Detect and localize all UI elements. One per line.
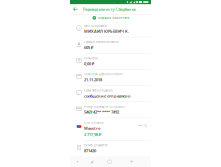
staticText: Счет списания: [84, 121, 104, 124]
button[interactable]: Главный экран: [99, 156, 120, 167]
button[interactable]: Номер счета/карты получателя: [70, 102, 151, 118]
staticText: 5469 42** **** 7492: [84, 109, 119, 115]
staticText: Сумма в валюте списания: [84, 40, 119, 44]
button[interactable]: ФИО получателя: [70, 21, 151, 37]
button[interactable]: Плановая дата исполнения: [70, 70, 151, 86]
button[interactable]: Сумма в валюте списания: [70, 37, 151, 53]
staticText: Статус SMS сообщения: [84, 89, 113, 92]
staticText: Maestro: [84, 125, 100, 131]
button[interactable]: Скрыть клавиатуру: [71, 156, 84, 167]
button[interactable]: Номер документа: [70, 141, 151, 156]
staticText: Номер счета/карты получателя: [84, 105, 125, 108]
staticText: 0,00 ₽: [84, 61, 94, 66]
staticText: Операция выполнена: [97, 16, 128, 20]
staticText: 871420: [84, 148, 96, 153]
button[interactable]: Последние приложения: [120, 156, 144, 167]
staticText: 21.11.2018: [84, 77, 102, 82]
staticText: Плановая дата исполнения: [84, 72, 123, 76]
button[interactable]: Статус SMS сообщения: [70, 86, 151, 102]
staticText: сообщение отправлено: [84, 93, 130, 98]
staticText: 2 717,98 ₽: [84, 132, 101, 137]
staticText: Номер документа: [84, 143, 107, 147]
button[interactable]: Счет списания: [70, 118, 151, 141]
staticText: МИХАИЛ ЮРЬЕВИЧ К.: [84, 29, 129, 34]
button[interactable]: Назад: [70, 5, 83, 13]
staticText: 605 ₽: [84, 45, 93, 50]
staticText: •••• 12: [138, 124, 147, 128]
button[interactable]: Назад: [84, 156, 99, 167]
staticText: Перевод клиенту Сбербанка: [83, 7, 136, 12]
staticText: Комиссия: [84, 56, 98, 60]
staticText: ФИО получателя: [84, 24, 107, 28]
button[interactable]: Комиссия: [70, 53, 151, 70]
